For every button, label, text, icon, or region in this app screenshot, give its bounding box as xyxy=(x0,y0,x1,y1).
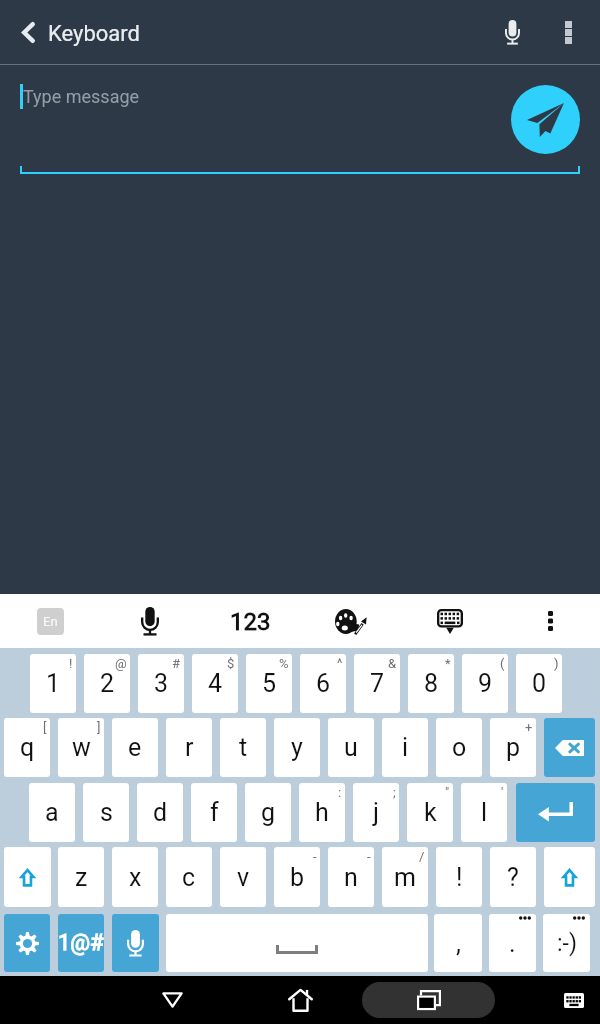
button[interactable]: Hide keyboard xyxy=(422,594,478,648)
staticText: [ xyxy=(43,720,47,735)
button[interactable]: $ xyxy=(192,654,238,713)
staticText: m xyxy=(394,863,416,892)
button[interactable]: y xyxy=(274,718,320,777)
staticText: 7 xyxy=(370,669,385,698)
button[interactable]: ) xyxy=(516,654,562,713)
button[interactable]: Back xyxy=(2,6,54,58)
staticText: Type message xyxy=(23,86,140,107)
button[interactable]: ( xyxy=(462,654,508,713)
button[interactable]: Theme xyxy=(322,594,378,648)
button[interactable]: ! xyxy=(30,654,76,713)
staticText: n xyxy=(344,863,358,892)
staticText: + xyxy=(525,720,533,735)
staticText: ! xyxy=(456,863,463,892)
staticText: ] xyxy=(97,720,101,735)
staticText: " xyxy=(445,785,450,800)
button[interactable]: z xyxy=(58,847,104,907)
button[interactable]: En xyxy=(26,594,74,648)
button[interactable]: * xyxy=(408,654,454,713)
button[interactable]: - xyxy=(328,847,374,907)
button[interactable]: e xyxy=(112,718,158,777)
button[interactable]: Space xyxy=(166,914,428,972)
staticText: 2 xyxy=(100,669,115,698)
staticText: h xyxy=(315,798,329,827)
button[interactable]: c xyxy=(166,847,212,907)
button[interactable]: t xyxy=(220,718,266,777)
button[interactable]: r xyxy=(166,718,212,777)
button[interactable]: # xyxy=(138,654,184,713)
button[interactable]: x xyxy=(112,847,158,907)
button[interactable]: " xyxy=(407,783,453,842)
button[interactable]: - xyxy=(274,847,320,907)
staticText: ' xyxy=(501,785,504,800)
button[interactable]: ^ xyxy=(300,654,346,713)
button[interactable]: ; xyxy=(353,783,399,842)
button[interactable]: ? xyxy=(490,847,536,907)
staticText: j xyxy=(373,798,379,827)
button[interactable]: Shift xyxy=(4,847,51,907)
staticText: / xyxy=(419,849,425,864)
button[interactable]: Enter xyxy=(516,783,595,842)
button[interactable]: + xyxy=(490,718,536,777)
button[interactable]: Settings xyxy=(4,914,50,972)
staticText: 6 xyxy=(316,669,331,698)
button[interactable]: % xyxy=(246,654,292,713)
button[interactable]: Change keyboard xyxy=(550,976,598,1024)
button[interactable]: Recents xyxy=(362,982,495,1018)
button[interactable]: Home xyxy=(276,976,324,1024)
button[interactable]: & xyxy=(354,654,400,713)
button[interactable]: Voice typing xyxy=(122,594,178,648)
staticText: i xyxy=(402,733,409,762)
button[interactable]: v xyxy=(220,847,266,907)
staticText: ( xyxy=(500,656,505,671)
button[interactable]: ! xyxy=(436,847,482,907)
staticText: 1 xyxy=(46,669,61,698)
button[interactable]: Send xyxy=(511,85,580,154)
staticText: 123 xyxy=(230,608,271,636)
button[interactable]: o xyxy=(436,718,482,777)
button[interactable]: Shift xyxy=(544,847,595,907)
staticText: 5 xyxy=(262,669,277,698)
button[interactable]: :-) xyxy=(543,914,590,972)
staticText: - xyxy=(313,849,317,864)
button[interactable]: More options xyxy=(545,6,591,58)
staticText: : xyxy=(338,785,342,800)
staticText: En xyxy=(43,614,58,629)
button[interactable]: Back xyxy=(148,976,196,1024)
button[interactable]: a xyxy=(29,783,75,842)
button[interactable]: g xyxy=(245,783,291,842)
staticText: r xyxy=(185,733,194,762)
button[interactable]: 1@# xyxy=(58,914,104,972)
staticText: & xyxy=(388,656,397,671)
button[interactable]: ] xyxy=(58,718,104,777)
staticText: ! xyxy=(69,656,73,671)
button[interactable]: u xyxy=(328,718,374,777)
button[interactable]: More xyxy=(527,594,573,648)
button[interactable]: s xyxy=(83,783,129,842)
button[interactable]: Voice input xyxy=(112,914,159,972)
button[interactable]: d xyxy=(137,783,183,842)
button[interactable]: . xyxy=(489,914,536,972)
staticText: ; xyxy=(393,785,396,800)
button[interactable]: @ xyxy=(84,654,130,713)
staticText: p xyxy=(506,733,521,762)
staticText: f xyxy=(210,798,219,827)
button[interactable]: , xyxy=(434,914,482,972)
button[interactable]: [ xyxy=(4,718,50,777)
button[interactable]: ' xyxy=(461,783,507,842)
button[interactable]: / xyxy=(382,847,428,907)
staticText: $ xyxy=(227,656,235,671)
staticText: ^ xyxy=(337,656,343,671)
button[interactable]: Voice input xyxy=(486,6,538,58)
button[interactable]: f xyxy=(191,783,237,842)
button[interactable]: 123 xyxy=(222,594,278,648)
staticText: q xyxy=(20,733,35,762)
staticText: @ xyxy=(115,656,127,671)
staticText: x xyxy=(129,863,142,892)
staticText: # xyxy=(172,656,181,671)
button[interactable]: : xyxy=(299,783,345,842)
button[interactable]: i xyxy=(382,718,428,777)
staticText: l xyxy=(481,798,488,827)
button[interactable]: Backspace xyxy=(544,718,595,777)
staticText: c xyxy=(182,863,196,892)
